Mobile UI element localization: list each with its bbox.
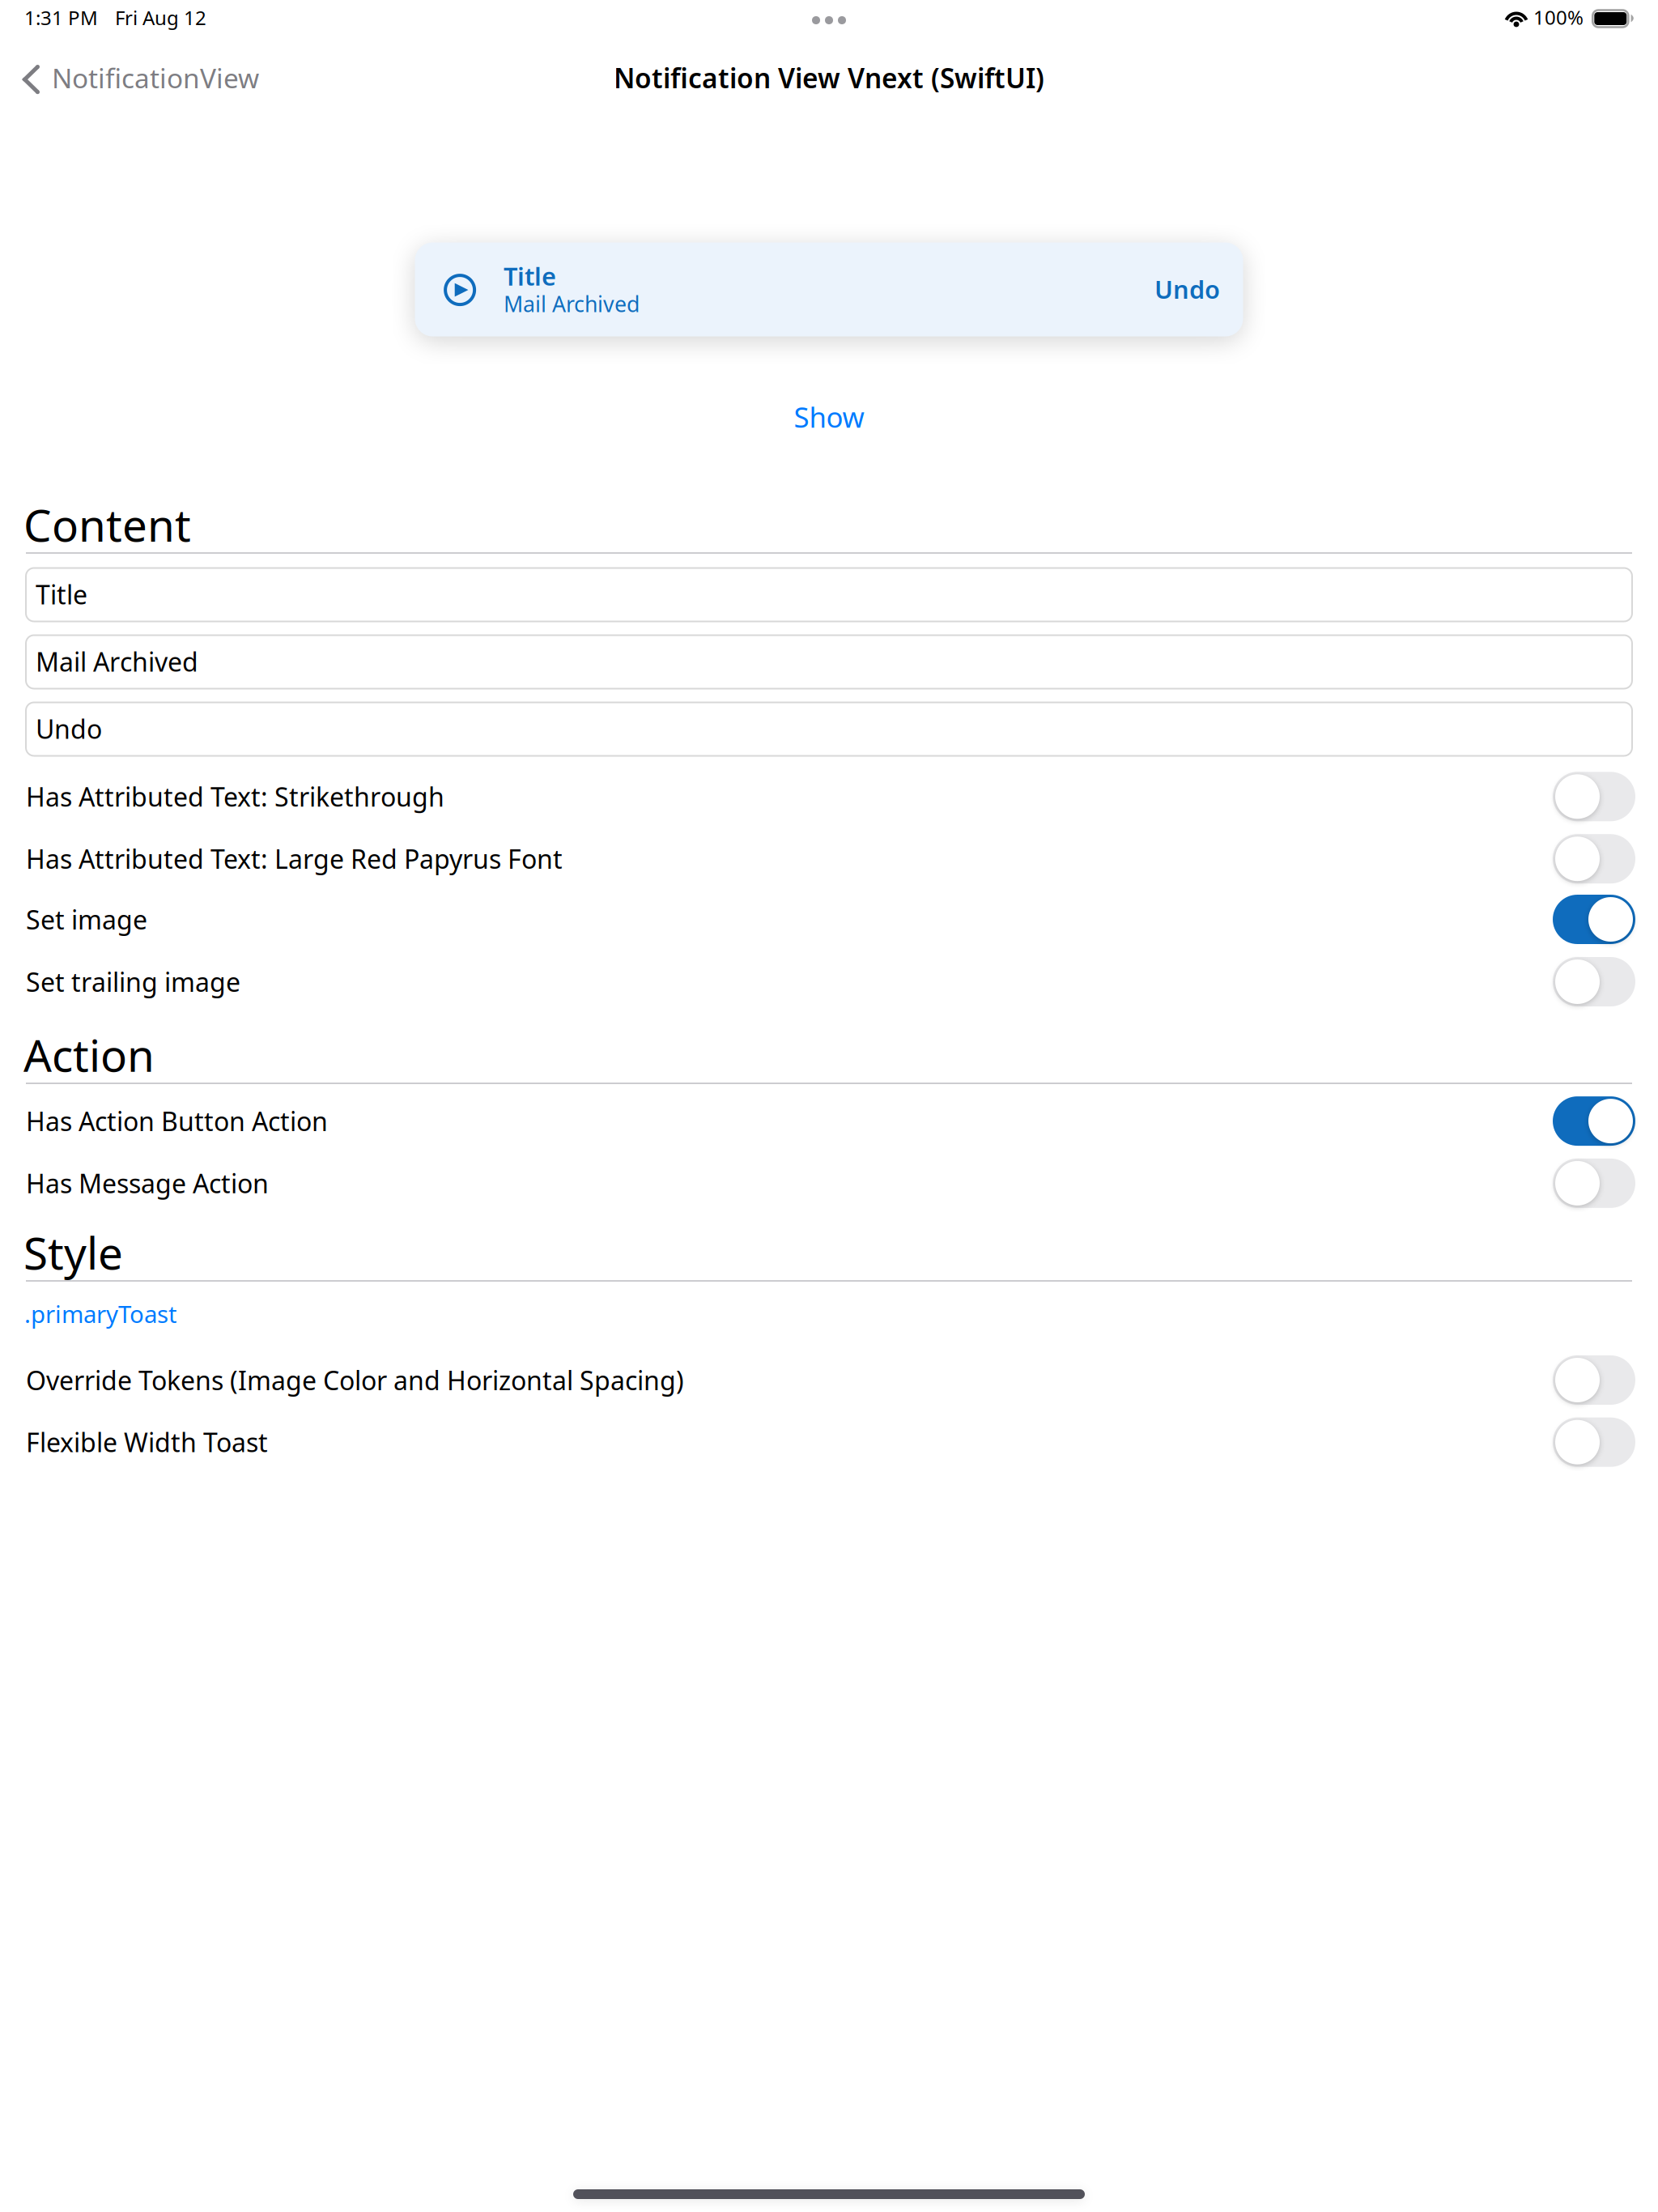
- button[interactable]: Has Message Action: [26, 1152, 1632, 1214]
- staticText: Flexible Width Toast: [26, 1425, 268, 1459]
- staticText: Action: [23, 1025, 155, 1084]
- button[interactable]: Show: [0, 388, 1658, 445]
- staticText: NotificationView: [52, 60, 259, 96]
- staticText: Show: [794, 398, 864, 435]
- staticText: 1:31 PM: [24, 5, 98, 30]
- button[interactable]: Mail Archived: [26, 635, 1632, 689]
- staticText: Title: [36, 577, 87, 612]
- button[interactable]: Undo: [977, 261, 1220, 318]
- button[interactable]: Has Action Button Action: [26, 1090, 1632, 1152]
- button[interactable]: .primaryToast: [24, 1286, 1630, 1342]
- button[interactable]: Set image: [26, 889, 1632, 950]
- button[interactable]: Has Attributed Text: Strikethrough: [26, 766, 1632, 827]
- staticText: Style: [23, 1223, 123, 1282]
- button[interactable]: Title: [415, 242, 1243, 336]
- staticText: Undo: [1154, 273, 1220, 306]
- button[interactable]: Override Tokens (Image Color and Horizon…: [26, 1349, 1632, 1411]
- staticText: Undo: [36, 712, 102, 746]
- staticText: Set image: [26, 902, 147, 937]
- staticText: Fri Aug 12: [115, 5, 206, 30]
- staticText: Has Action Button Action: [26, 1104, 328, 1138]
- button[interactable]: Flexible Width Toast: [26, 1411, 1632, 1473]
- staticText: Set trailing image: [26, 965, 240, 999]
- staticText: Notification View Vnext (SwiftUI): [614, 60, 1044, 96]
- button[interactable]: Back to NotificationView: [16, 53, 259, 102]
- staticText: Override Tokens (Image Color and Horizon…: [26, 1363, 684, 1397]
- button[interactable]: Title: [26, 568, 1632, 621]
- staticText: 100%: [1533, 4, 1584, 30]
- staticText: Content: [23, 495, 191, 554]
- staticText: Has Attributed Text: Strikethrough: [26, 779, 444, 814]
- button[interactable]: Undo: [26, 702, 1632, 756]
- staticText: Title: [504, 259, 556, 292]
- button[interactable]: Set trailing image: [26, 951, 1632, 1012]
- staticText: Mail Archived: [36, 644, 198, 679]
- button[interactable]: Has Attributed Text: Large Red Papyrus F…: [26, 828, 1632, 890]
- staticText: Has Attributed Text: Large Red Papyrus F…: [26, 842, 563, 876]
- staticText: .primaryToast: [24, 1298, 177, 1330]
- staticText: Has Message Action: [26, 1166, 269, 1200]
- staticText: Mail Archived: [504, 289, 640, 318]
